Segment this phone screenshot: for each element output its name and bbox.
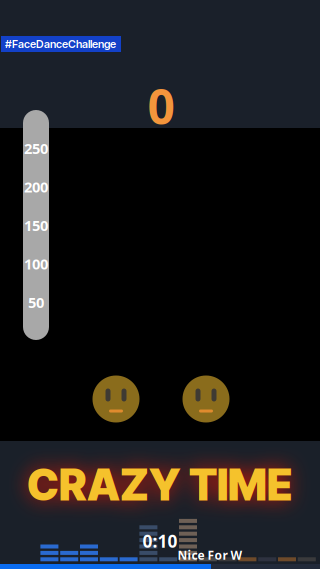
staticText: 0:10: [142, 529, 177, 552]
staticText: 0: [147, 74, 174, 138]
staticText: 250: [24, 138, 48, 158]
staticText: 100: [24, 254, 48, 273]
button[interactable]: #FaceDanceChallenge: [1, 36, 121, 52]
staticText: CRAZY TIME: [27, 459, 293, 511]
staticText: 150: [24, 215, 48, 235]
staticText: 200: [24, 177, 48, 196]
staticText: Nice For W: [177, 547, 242, 563]
staticText: CRAZY TIME: [27, 459, 293, 511]
staticText: #FaceDanceChallenge: [5, 37, 116, 51]
staticText: 50: [28, 292, 44, 312]
